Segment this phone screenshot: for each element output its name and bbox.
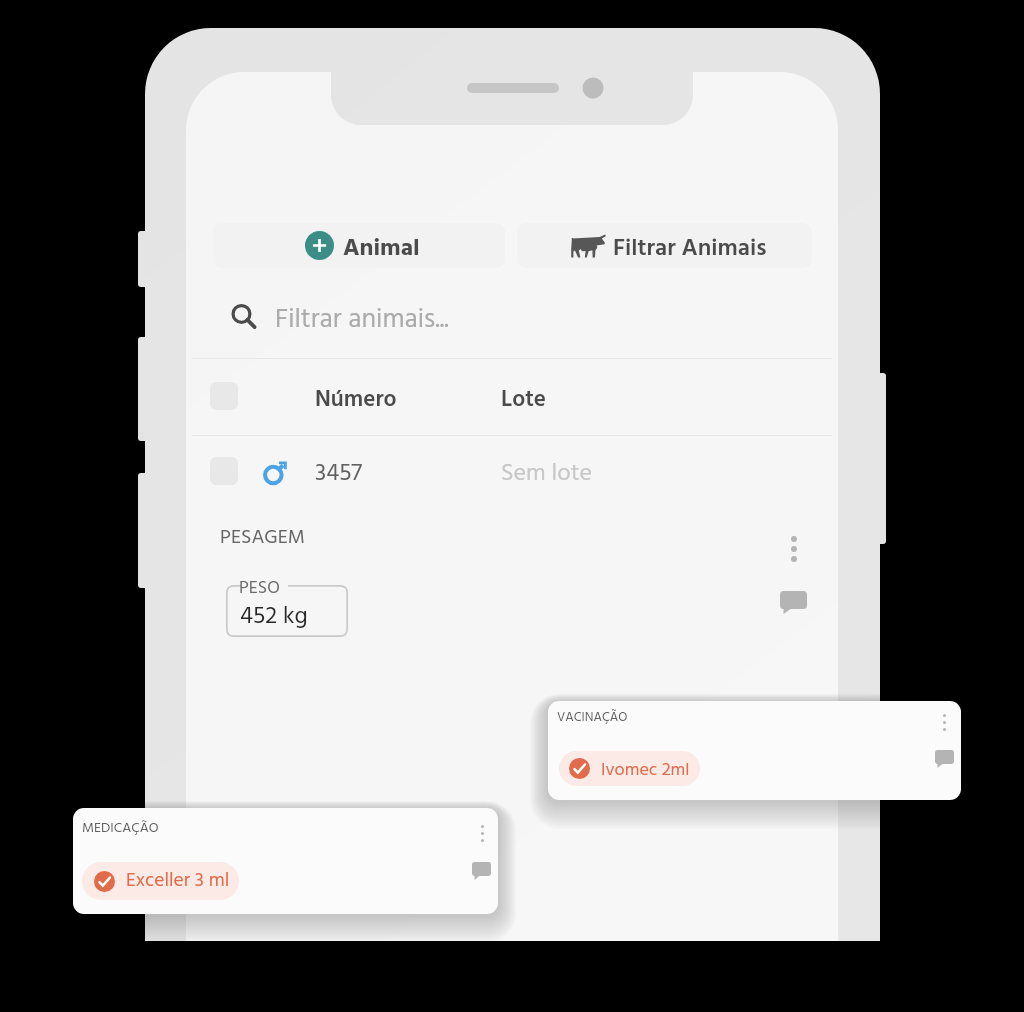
staticText: 452 kg — [240, 598, 308, 636]
staticText: Número — [315, 382, 397, 419]
staticText: Sem lote — [501, 455, 593, 493]
staticText: Filtrar animais... — [275, 299, 449, 342]
button[interactable] — [210, 434, 810, 506]
staticText: VACINAÇÃO — [557, 707, 628, 728]
button[interactable]: Filtrar Animais — [517, 223, 812, 268]
button[interactable] — [212, 287, 812, 351]
button[interactable]: More options — [469, 819, 495, 848]
button[interactable]: MEDICAÇÃO — [73, 808, 498, 914]
staticText: MEDICAÇÃO — [82, 817, 159, 839]
button[interactable]: Comment — [929, 744, 960, 773]
staticText: Lote — [501, 382, 547, 419]
button[interactable]: More options — [931, 708, 957, 737]
staticText: PESO — [239, 574, 280, 603]
button[interactable]: VACINAÇÃO — [548, 701, 961, 800]
button[interactable]: Comment — [773, 582, 813, 622]
staticText: Exceller 3 ml — [126, 865, 230, 896]
staticText: Animal — [343, 230, 420, 268]
staticText: Ivomec 2ml — [601, 756, 690, 785]
button[interactable]: Comment — [466, 856, 497, 885]
button[interactable]: Animal — [213, 223, 505, 268]
staticText: Filtrar Animais — [613, 230, 767, 268]
button[interactable]: More options — [778, 533, 810, 565]
staticText: 3457 — [315, 455, 363, 493]
staticText: PESAGEM — [220, 522, 305, 554]
